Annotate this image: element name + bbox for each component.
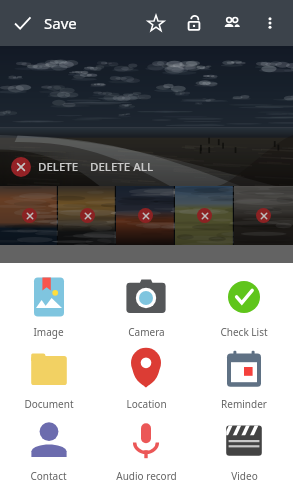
- button[interactable]: DELETE ALL: [90, 159, 154, 175]
- button[interactable]: Remove photo 2: [58, 186, 116, 245]
- button[interactable]: Remove photo 3: [116, 186, 175, 245]
- staticText: Video: [231, 469, 258, 483]
- button[interactable]: Remove photo 4: [175, 186, 234, 245]
- staticText: Camera: [128, 325, 165, 339]
- staticText: Reminder: [221, 397, 267, 411]
- staticText: Image: [33, 325, 64, 339]
- staticText: Contact: [30, 469, 67, 483]
- button[interactable]: Document: [0, 342, 97, 414]
- staticText: Audio record: [116, 469, 177, 483]
- button[interactable]: People: [213, 0, 251, 46]
- staticText: Save: [44, 13, 77, 33]
- button[interactable]: Remove photo 5: [234, 186, 293, 245]
- button[interactable]: Video: [195, 414, 293, 486]
- button[interactable]: Camera: [97, 270, 195, 342]
- staticText: DELETE ALL: [90, 159, 154, 175]
- button[interactable]: Audio record: [97, 414, 195, 486]
- button[interactable]: Lock: [175, 0, 213, 46]
- button[interactable]: Check List: [195, 270, 293, 342]
- staticText: Check List: [220, 325, 268, 339]
- button[interactable]: Favourite: [137, 0, 175, 46]
- staticText: Document: [24, 397, 74, 411]
- button[interactable]: Reminder: [195, 342, 293, 414]
- button[interactable]: Contact: [0, 414, 97, 486]
- button[interactable]: Remove photo 1: [0, 186, 58, 245]
- button[interactable]: DELETE: [38, 159, 79, 175]
- button[interactable]: More options: [251, 0, 289, 46]
- button[interactable]: Location: [97, 342, 195, 414]
- button[interactable]: Save: [0, 0, 44, 46]
- staticText: DELETE: [38, 159, 79, 175]
- staticText: Location: [126, 397, 167, 411]
- button[interactable]: Delete: [11, 157, 31, 177]
- button[interactable]: Image: [0, 270, 97, 342]
